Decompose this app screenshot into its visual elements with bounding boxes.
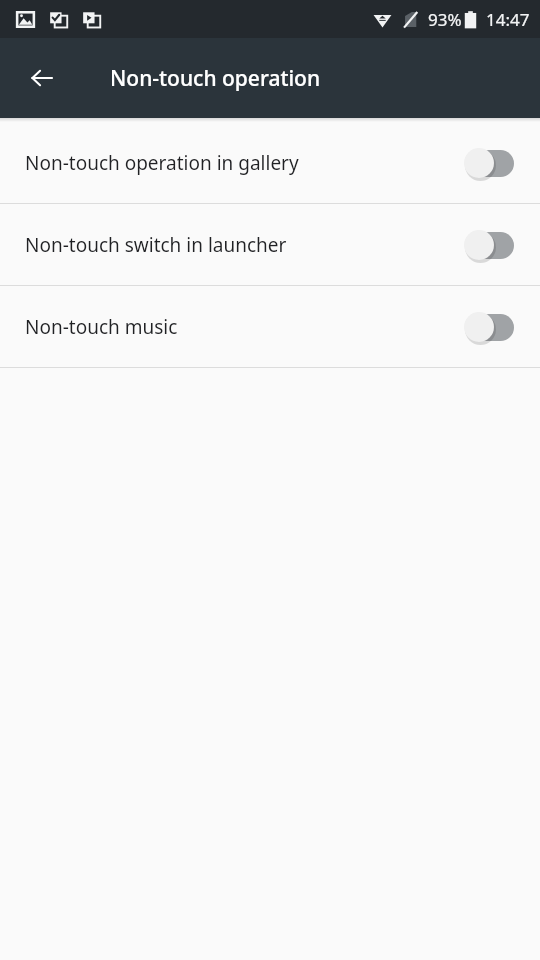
button[interactable]: Toggle off xyxy=(464,228,516,262)
button[interactable]: Non-touch operation in gallery xyxy=(0,122,540,203)
button[interactable]: Toggle off xyxy=(464,310,516,344)
button[interactable]: Back xyxy=(18,54,66,102)
staticText: Non-touch operation xyxy=(110,64,321,93)
staticText: Non-touch operation in gallery xyxy=(25,150,464,176)
button[interactable]: Toggle off xyxy=(464,146,516,180)
button[interactable]: Non-touch switch in launcher xyxy=(0,204,540,285)
button[interactable]: Non-touch music xyxy=(0,286,540,367)
staticText: Non-touch switch in launcher xyxy=(25,232,464,258)
staticText: 93% xyxy=(428,8,462,31)
staticText: Non-touch music xyxy=(25,314,464,340)
staticText: 14:47 xyxy=(486,8,530,31)
